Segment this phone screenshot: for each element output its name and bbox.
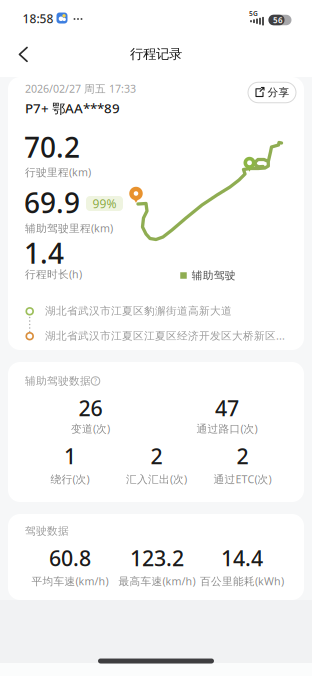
staticText: 123.2: [130, 544, 184, 572]
staticText: 2: [236, 442, 248, 470]
staticText: P7+ 鄂AA***89: [25, 99, 120, 117]
button[interactable]: Back: [7, 42, 37, 66]
staticText: 行驶里程(km): [25, 165, 91, 179]
staticText: 辅助驾驶: [192, 269, 236, 282]
staticText: 14.4: [221, 544, 263, 572]
button[interactable]: 分享: [248, 82, 296, 103]
staticText: 60.8: [49, 544, 91, 572]
staticText: 1: [64, 442, 76, 470]
staticText: 56: [273, 15, 283, 25]
staticText: 行程记录: [130, 46, 182, 62]
staticText: 变道(次): [71, 421, 110, 436]
staticText: ?: [94, 377, 97, 385]
staticText: 47: [215, 394, 239, 422]
staticText: 分享: [267, 86, 289, 99]
staticText: 2026/02/27 周五 17:33: [25, 81, 136, 96]
staticText: 绕行(次): [50, 472, 89, 486]
staticText: 70.2: [24, 128, 80, 166]
button[interactable]: 辅助驾驶数据说明: [89, 375, 101, 387]
staticText: 1.4: [24, 234, 64, 272]
staticText: 百公里能耗(kWh): [200, 574, 284, 588]
staticText: 驾驶数据: [25, 524, 69, 537]
staticText: 湖北省武汉市江夏区江夏区经济开发区大桥新区...: [45, 328, 285, 343]
staticText: 辅助驾驶数据: [25, 374, 91, 387]
staticText: 99%: [92, 195, 116, 211]
staticText: 行程时长(h): [25, 267, 82, 281]
staticText: 26: [78, 394, 102, 422]
staticText: 18:58: [22, 10, 53, 26]
staticText: 通过路口(次): [196, 421, 257, 436]
staticText: 69.9: [24, 184, 80, 221]
staticText: 2: [150, 442, 162, 470]
staticText: 辅助驾驶里程(km): [25, 221, 113, 235]
staticText: 通过ETC(次): [213, 472, 271, 486]
staticText: 汇入汇出(次): [126, 472, 187, 486]
staticText: 最高车速(km/h): [118, 574, 195, 588]
staticText: 5G: [249, 9, 258, 18]
staticText: 平均车速(km/h): [31, 574, 108, 588]
staticText: 湖北省武汉市江夏区豹澥街道高新大道: [45, 304, 232, 317]
